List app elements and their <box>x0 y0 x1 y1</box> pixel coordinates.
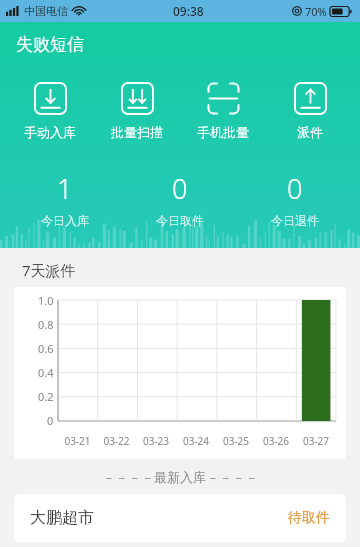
staticText: 03-25 <box>216 434 256 448</box>
button[interactable]: 0 <box>130 170 230 228</box>
staticText: 派件 <box>297 124 323 140</box>
staticText: 0 <box>287 170 303 207</box>
button[interactable]: 手机批量 <box>186 80 260 142</box>
staticText: 0.2 <box>38 389 54 404</box>
button[interactable]: 大鹏超市 <box>14 494 346 542</box>
staticText: 手机批量 <box>197 124 249 140</box>
staticText: 0.4 <box>38 365 54 380</box>
staticText: 03-26 <box>256 434 296 448</box>
staticText: 大鹏超市 <box>30 508 94 528</box>
staticText: 7天派件 <box>22 260 76 280</box>
staticText: 03-27 <box>296 434 336 448</box>
staticText: 今日入库 <box>41 213 89 228</box>
button[interactable]: 1 <box>15 170 115 228</box>
button[interactable]: 0 <box>245 170 345 228</box>
staticText: 03-24 <box>176 434 216 448</box>
staticText: 03-23 <box>136 434 176 448</box>
staticText: 失败短信 <box>16 34 84 55</box>
staticText: 0.8 <box>38 317 54 332</box>
staticText: －－－－最新入库－－－－ <box>102 469 258 485</box>
staticText: 今日取件 <box>156 213 204 228</box>
staticText: 中国电信 <box>24 4 68 18</box>
staticText: 70% <box>305 4 327 19</box>
staticText: 0 <box>172 170 188 207</box>
staticText: 09:38 <box>173 3 204 19</box>
staticText: 03-21 <box>58 434 97 448</box>
staticText: 1 <box>57 170 73 207</box>
staticText: 1.0 <box>38 293 54 308</box>
staticText: 今日退件 <box>271 213 319 228</box>
staticText: 批量扫描 <box>111 124 163 140</box>
staticText: 手动入库 <box>24 124 76 140</box>
staticText: 0.6 <box>38 341 54 356</box>
staticText: 03-22 <box>97 434 136 448</box>
staticText: 待取件 <box>288 509 330 527</box>
button[interactable]: 派件 <box>273 80 347 142</box>
staticText: 0 <box>47 413 54 428</box>
button[interactable]: 手动入库 <box>13 80 87 142</box>
button[interactable]: 批量扫描 <box>100 80 174 142</box>
